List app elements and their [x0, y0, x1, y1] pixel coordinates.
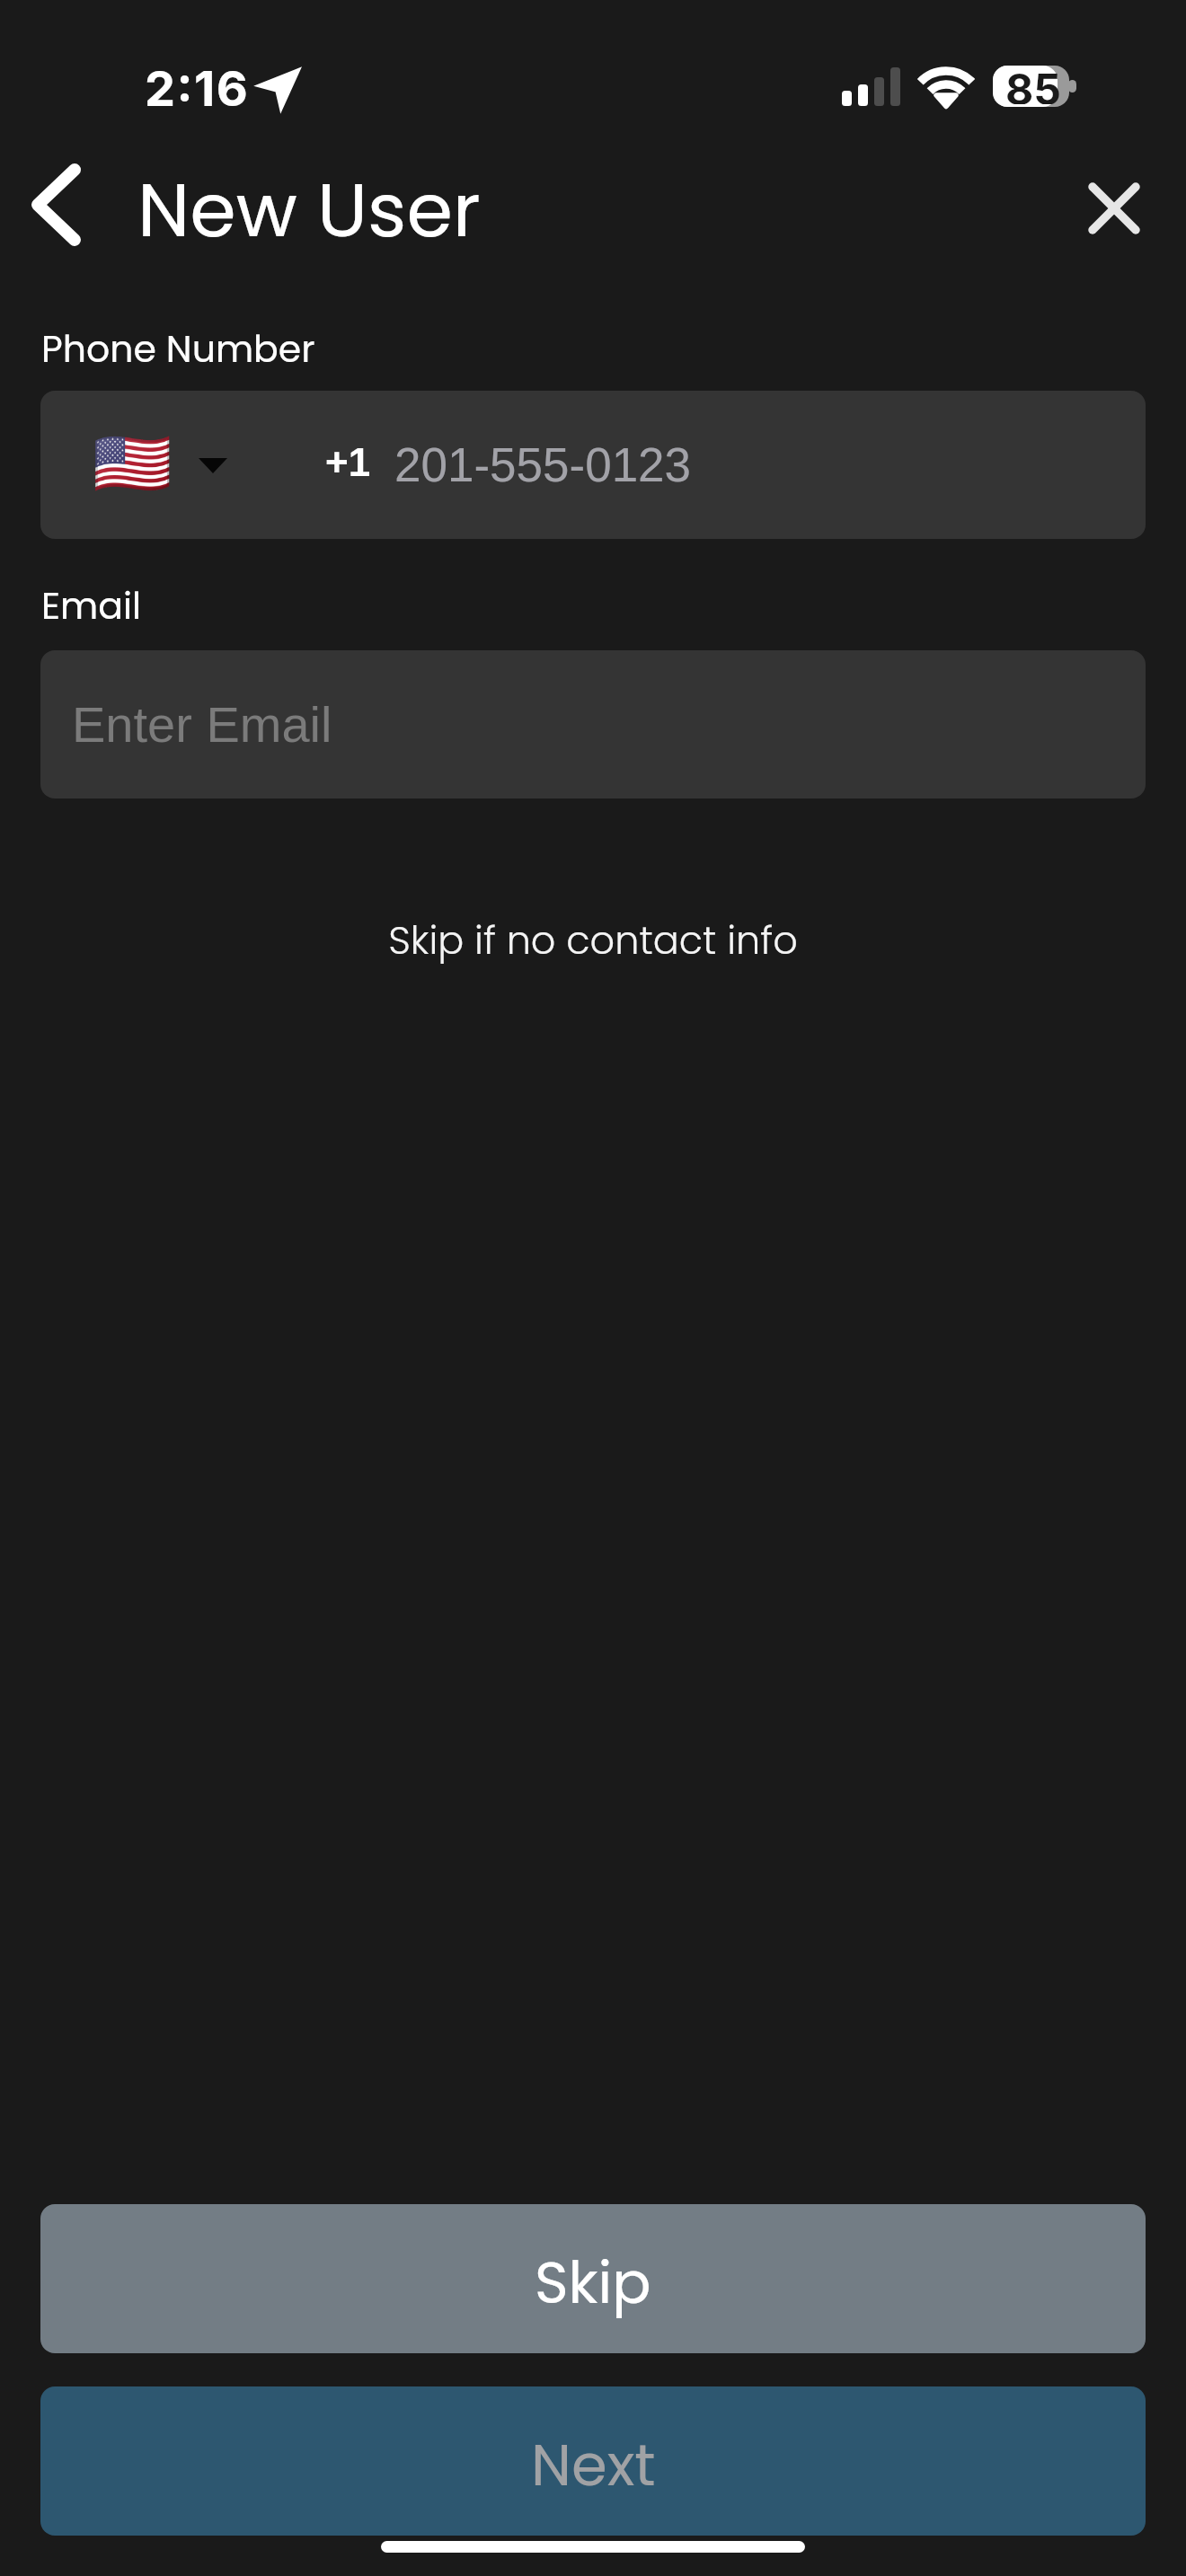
staticText: Skip if no contact info: [0, 913, 1186, 967]
button[interactable]: Close: [1064, 158, 1164, 259]
staticText: +1: [325, 440, 371, 484]
staticText: 85: [1005, 63, 1061, 104]
staticText: Skip: [535, 2243, 651, 2324]
staticText: 🇺🇸: [93, 426, 173, 500]
staticText: New User: [137, 158, 481, 262]
staticText: Phone Number: [41, 323, 315, 375]
staticText: 201-555-0123: [394, 438, 692, 491]
button[interactable]: Select country code: [58, 391, 279, 539]
staticText: Enter Email: [72, 696, 332, 753]
button[interactable]: Enter Email: [40, 650, 1146, 798]
button[interactable]: Next: [40, 2386, 1146, 2536]
button[interactable]: Select country code: [40, 391, 1146, 539]
staticText: 2:16: [145, 59, 250, 118]
button[interactable]: Skip: [40, 2204, 1146, 2353]
staticText: Next: [531, 2425, 656, 2506]
button[interactable]: Back: [0, 144, 111, 266]
staticText: Email: [41, 580, 142, 631]
